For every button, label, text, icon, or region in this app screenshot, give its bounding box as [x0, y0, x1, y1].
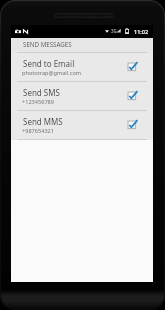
staticText: 11:02	[134, 28, 149, 35]
other: Toggle	[128, 121, 139, 132]
staticText: +123456789	[22, 98, 54, 106]
staticText: Send SMS	[23, 87, 60, 98]
other: Toggle	[128, 63, 139, 74]
button[interactable]: Send SMS	[11, 82, 153, 111]
staticText: +987654321	[22, 127, 54, 135]
other: Earpiece speaker	[54, 13, 114, 18]
staticText: Send MMS	[23, 116, 63, 127]
button[interactable]: Send MMS	[11, 111, 153, 140]
staticText: Send to Email	[23, 58, 75, 69]
staticText: phototrap@gmail.com	[22, 69, 82, 77]
staticText: SEND MESSAGES	[23, 40, 72, 48]
button[interactable]: Send to Email	[11, 53, 153, 82]
staticText: 3G	[111, 28, 117, 34]
other: Toggle	[128, 92, 139, 103]
